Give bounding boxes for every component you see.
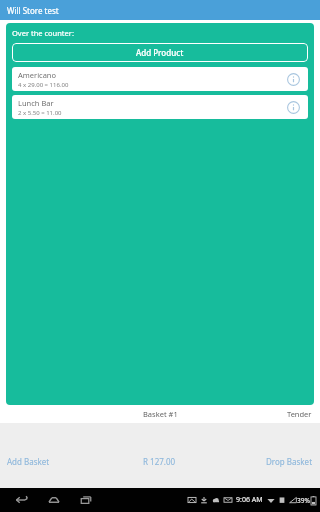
staticText: 9:06 AM [236, 495, 263, 505]
staticText: Will Store test [7, 5, 59, 16]
staticText: Over the counter: [12, 28, 74, 38]
staticText: Add Basket [7, 456, 50, 467]
staticText: 4 x 29.00 = 116.00 [18, 81, 69, 89]
staticText: 39% [297, 496, 310, 505]
button[interactable]: Add Basket [0, 452, 106, 471]
staticText: 2 x 5.50 = 11.00 [18, 109, 62, 117]
staticText: Lunch Bar [18, 98, 54, 108]
staticText: R 127.00 [143, 456, 176, 467]
button[interactable]: Tender [279, 405, 320, 423]
button[interactable]: Item details [284, 98, 302, 116]
button[interactable]: Item details [284, 70, 302, 88]
staticText: Basket #1 [143, 409, 178, 419]
button[interactable]: Back [10, 488, 34, 512]
staticText: Add Product [136, 47, 184, 58]
button[interactable]: Home [42, 488, 66, 512]
button[interactable]: Lunch Bar [12, 95, 308, 119]
staticText: Tender [287, 409, 312, 419]
staticText: Drop Basket [266, 456, 313, 467]
button[interactable]: Drop Basket [213, 452, 320, 471]
staticText: Americano [18, 70, 57, 80]
button[interactable]: Americano [12, 67, 308, 91]
button[interactable]: Recent apps [74, 488, 98, 512]
button[interactable]: Add Product [12, 43, 308, 62]
